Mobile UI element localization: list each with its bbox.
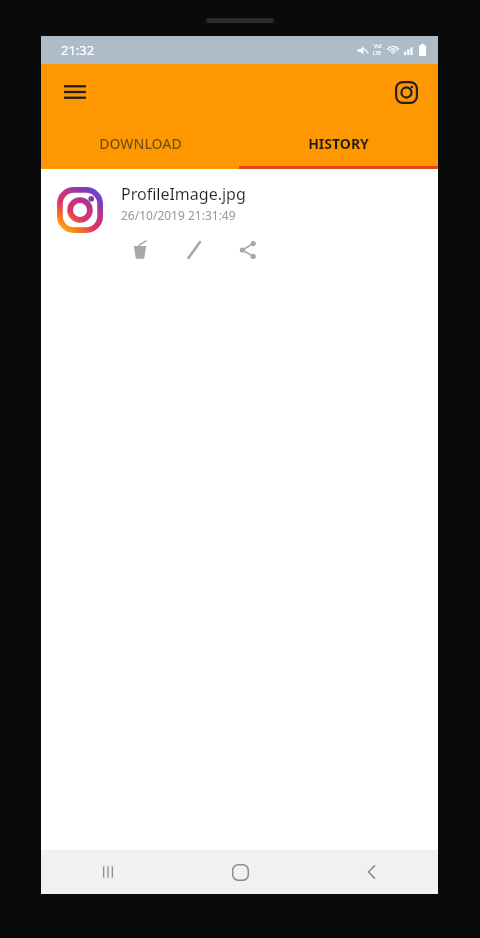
button[interactable]: Instagram bbox=[386, 72, 426, 112]
staticText: 26/10/2019 21:31:49 bbox=[121, 207, 236, 223]
staticText: LTE bbox=[373, 50, 382, 57]
button[interactable]: Edit bbox=[175, 231, 213, 269]
button[interactable]: Back bbox=[306, 850, 438, 894]
button[interactable]: Delete bbox=[121, 231, 159, 269]
button[interactable]: HISTORY bbox=[239, 120, 438, 166]
staticText: HISTORY bbox=[308, 134, 369, 153]
button[interactable]: Open navigation menu bbox=[55, 72, 95, 112]
staticText: 21:32 bbox=[61, 41, 95, 59]
staticText: DOWNLOAD bbox=[99, 134, 182, 153]
button[interactable]: DOWNLOAD bbox=[41, 120, 239, 166]
button[interactable]: Recent apps bbox=[41, 850, 174, 894]
staticText: ProfileImage.jpg bbox=[121, 183, 246, 205]
button[interactable]: Home bbox=[174, 850, 306, 894]
button[interactable]: ProfileImage.jpg bbox=[41, 177, 438, 277]
button[interactable]: Share bbox=[229, 231, 267, 269]
staticText: VoI bbox=[374, 43, 382, 50]
